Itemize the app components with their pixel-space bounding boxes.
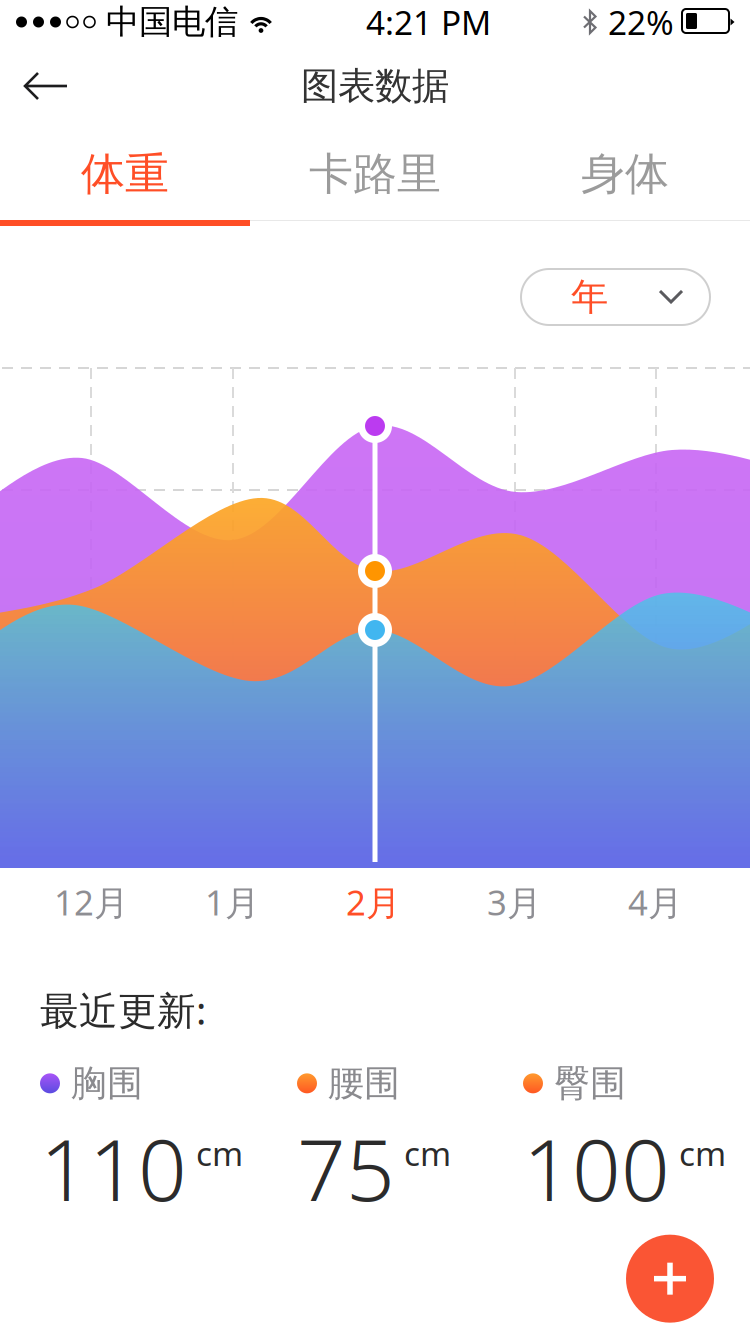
staticText: 胸围 bbox=[71, 1061, 143, 1105]
button[interactable]: 年 bbox=[521, 269, 710, 325]
staticText: 4:21 PM bbox=[366, 0, 491, 44]
staticText: 中国电信 bbox=[106, 1, 238, 42]
staticText: 75 bbox=[297, 1111, 395, 1225]
button[interactable]: 身体 bbox=[500, 128, 750, 226]
staticText: 100 bbox=[523, 1111, 670, 1225]
staticText: 22% bbox=[608, 0, 674, 44]
staticText: 年 bbox=[571, 274, 608, 320]
staticText: 臀围 bbox=[554, 1061, 626, 1105]
staticText: cm bbox=[679, 1131, 726, 1175]
staticText: 图表数据 bbox=[301, 63, 449, 109]
staticText: 卡路里 bbox=[309, 147, 441, 201]
staticText: 腰围 bbox=[328, 1061, 400, 1105]
staticText: 4月 bbox=[628, 879, 683, 925]
staticText: 12月 bbox=[54, 879, 129, 925]
staticText: cm bbox=[404, 1131, 451, 1175]
staticText: 3月 bbox=[487, 879, 542, 925]
button[interactable]: Back bbox=[0, 63, 84, 109]
button[interactable]: Add measurement bbox=[626, 1235, 714, 1323]
staticText: 身体 bbox=[581, 147, 669, 201]
staticText: 110 bbox=[40, 1111, 187, 1225]
staticText: 1月 bbox=[205, 879, 260, 925]
button[interactable]: 卡路里 bbox=[250, 128, 500, 226]
staticText: 体重 bbox=[81, 147, 169, 201]
staticText: 2月 bbox=[346, 879, 401, 925]
button[interactable]: 体重 bbox=[0, 128, 250, 226]
staticText: 最近更新: bbox=[40, 984, 206, 1035]
staticText: cm bbox=[196, 1131, 243, 1175]
